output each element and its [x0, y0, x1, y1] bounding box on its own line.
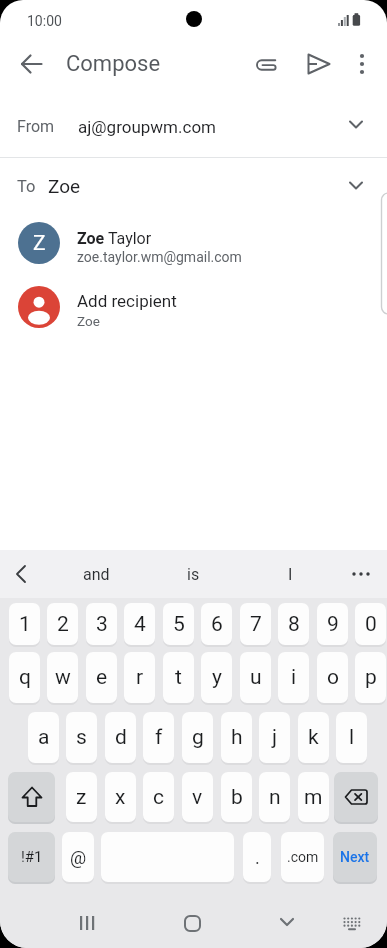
staticText: I [288, 565, 293, 584]
staticText: h [231, 725, 243, 750]
button[interactable]: 6 [201, 603, 232, 645]
staticText: f [155, 725, 163, 750]
staticText: Add recipient [77, 291, 177, 311]
staticText: j [272, 725, 278, 750]
button[interactable]: k [298, 712, 329, 763]
staticText: c [153, 785, 164, 810]
button[interactable] [184, 915, 201, 932]
button[interactable] [255, 52, 279, 76]
button[interactable]: m [298, 772, 329, 822]
button[interactable]: 8 [278, 603, 309, 645]
button[interactable]: .com [281, 832, 324, 882]
button[interactable] [0, 275, 381, 339]
button[interactable] [280, 917, 294, 927]
staticText: zoe.taylor.wm@gmail.com [77, 249, 242, 265]
staticText: x [115, 785, 126, 810]
button[interactable]: 2 [47, 603, 78, 645]
button[interactable]: e [86, 652, 117, 703]
button[interactable] [0, 212, 381, 275]
staticText: i [291, 665, 297, 690]
button[interactable]: I [250, 550, 330, 598]
staticText: To [17, 177, 36, 196]
button[interactable]: q [9, 652, 40, 703]
button[interactable]: i [278, 652, 309, 703]
button[interactable]: n [259, 772, 290, 822]
staticText: Next [340, 849, 370, 865]
button[interactable]: d [105, 712, 136, 763]
button[interactable]: s [66, 712, 97, 763]
staticText: z [76, 785, 87, 810]
button[interactable] [350, 566, 372, 582]
staticText: d [115, 725, 127, 750]
button[interactable] [0, 158, 387, 214]
button[interactable]: g [182, 712, 213, 763]
button[interactable]: v [182, 772, 213, 822]
staticText: b [231, 785, 243, 810]
button[interactable]: 1 [9, 603, 40, 645]
staticText: a [38, 725, 50, 750]
staticText: 7 [250, 612, 262, 637]
button[interactable] [12, 565, 32, 583]
button[interactable] [354, 53, 370, 75]
staticText: 4 [134, 612, 146, 637]
button[interactable] [21, 53, 43, 75]
staticText: 3 [96, 612, 108, 637]
button[interactable]: p [355, 652, 386, 703]
staticText: u [250, 665, 262, 690]
staticText: Zoe Taylor [77, 229, 152, 248]
button[interactable]: c [143, 772, 174, 822]
button[interactable] [334, 772, 378, 822]
staticText: Compose [66, 51, 161, 77]
button[interactable]: t [163, 652, 194, 703]
staticText: .com [287, 849, 319, 865]
button[interactable]: b [221, 772, 252, 822]
staticText: 8 [288, 612, 300, 637]
staticText: t [175, 665, 182, 690]
staticText: 9 [327, 612, 339, 637]
button[interactable]: o [317, 652, 348, 703]
button[interactable] [307, 53, 331, 75]
staticText: 2 [57, 612, 69, 637]
staticText: s [76, 725, 87, 750]
button[interactable]: z [66, 772, 97, 822]
button[interactable]: r [124, 652, 155, 703]
button[interactable]: f [143, 712, 174, 763]
button[interactable]: 0 [355, 603, 386, 645]
staticText: y [212, 665, 222, 690]
button[interactable]: h [221, 712, 252, 763]
button[interactable] [342, 915, 362, 931]
button[interactable]: . [243, 832, 271, 882]
button[interactable]: 7 [240, 603, 271, 645]
staticText: w [55, 665, 71, 690]
staticText: l [349, 725, 355, 750]
button[interactable]: !#1 [8, 832, 55, 882]
button[interactable]: @ [62, 832, 94, 882]
button[interactable]: 9 [317, 603, 348, 645]
button[interactable] [0, 96, 387, 157]
staticText: From [17, 117, 55, 136]
button[interactable]: 3 [86, 603, 117, 645]
button[interactable]: u [240, 652, 271, 703]
staticText: 5 [173, 612, 185, 637]
staticText: v [192, 785, 203, 810]
button[interactable]: is [153, 550, 233, 598]
staticText: n [269, 785, 281, 810]
button[interactable]: and [56, 550, 136, 598]
button[interactable]: l [336, 712, 367, 763]
staticText: p [365, 665, 377, 690]
button[interactable]: Next [333, 832, 377, 882]
staticText: @ [70, 847, 87, 868]
button[interactable] [79, 915, 95, 931]
staticText: k [308, 725, 319, 750]
button[interactable]: w [47, 652, 78, 703]
button[interactable]: 4 [124, 603, 155, 645]
button[interactable]: x [105, 772, 136, 822]
button[interactable]: 5 [163, 603, 194, 645]
button[interactable]: a [28, 712, 59, 763]
staticText: 1 [19, 612, 31, 637]
staticText: q [19, 665, 31, 690]
button[interactable]: y [201, 652, 232, 703]
button[interactable]: j [259, 712, 290, 763]
button[interactable] [8, 772, 55, 822]
